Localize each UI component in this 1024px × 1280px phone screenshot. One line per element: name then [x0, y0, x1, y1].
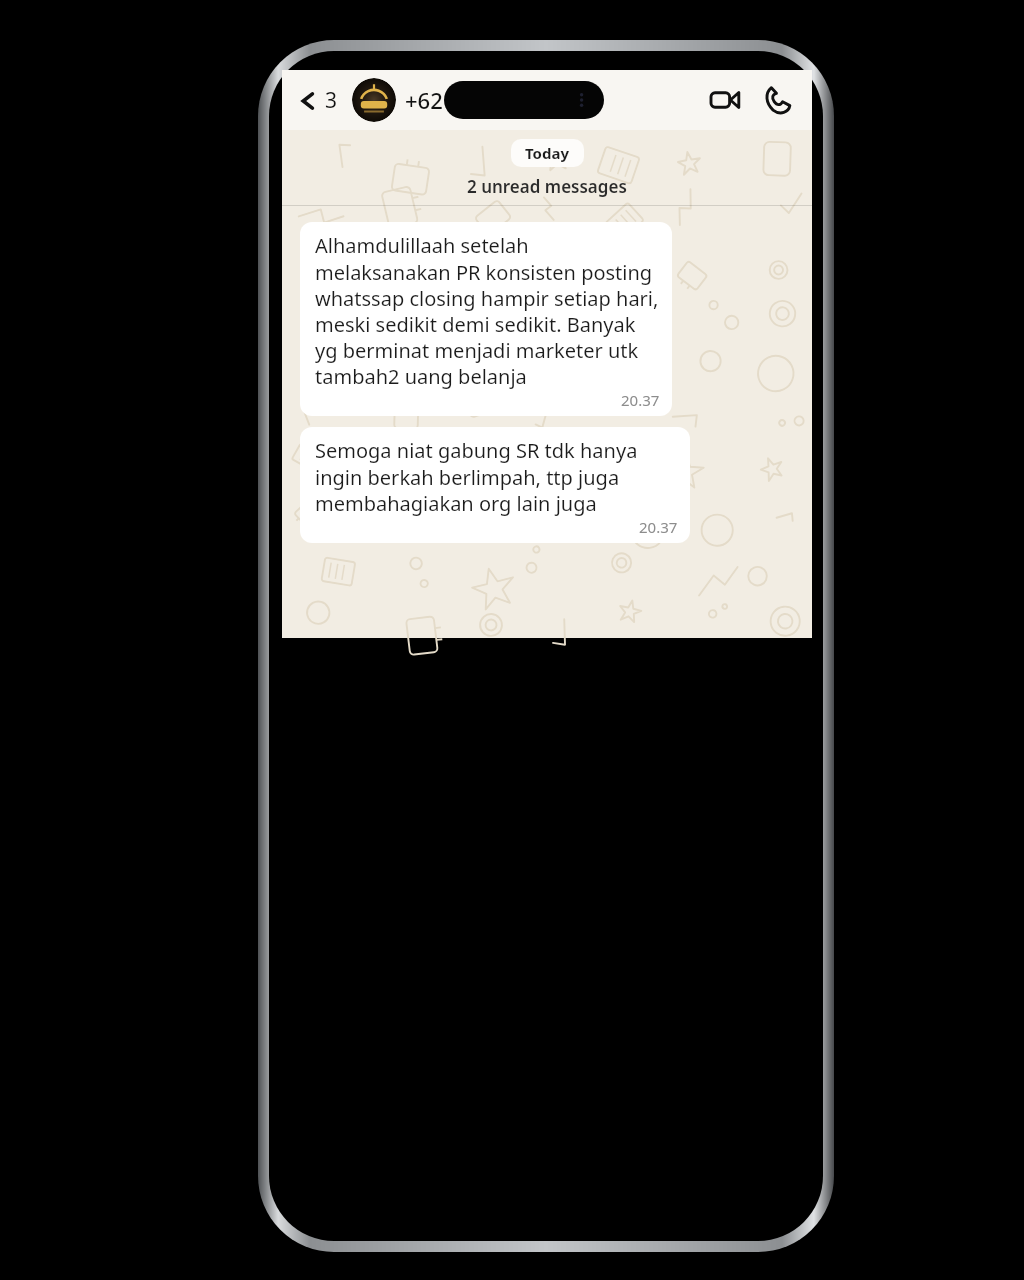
- staticText: 2 unread messages: [467, 175, 627, 198]
- button[interactable]: Video call: [702, 77, 748, 123]
- button[interactable]: Back, 3 chats: [294, 80, 342, 121]
- button[interactable]: Today: [511, 139, 584, 167]
- staticText: Alhamdulillaah setelah melaksanakan PR k…: [315, 232, 660, 390]
- button[interactable]: +62: [405, 81, 702, 119]
- staticText: +62: [405, 85, 443, 115]
- button[interactable]: Profile photo: [352, 78, 396, 122]
- staticText: 3: [325, 86, 338, 115]
- staticText: Semoga niat gabung SR tdk hanya ingin be…: [315, 437, 678, 517]
- staticText: 20.37: [639, 517, 678, 537]
- button[interactable]: Semoga niat gabung SR tdk hanya ingin be…: [300, 427, 690, 543]
- staticText: Today: [525, 143, 570, 163]
- staticText: 20.37: [621, 390, 660, 410]
- button[interactable]: Voice call: [754, 77, 800, 123]
- button[interactable]: Alhamdulillaah setelah melaksanakan PR k…: [300, 222, 672, 416]
